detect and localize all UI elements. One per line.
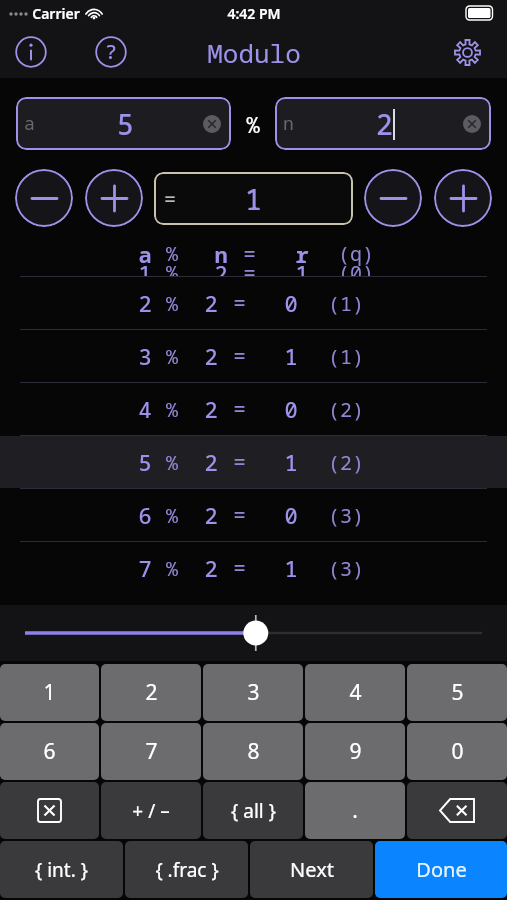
button[interactable]: 2 [0, 277, 507, 329]
button[interactable]: 2 [101, 664, 201, 721]
staticText: 5 [451, 678, 464, 707]
staticText: r [295, 239, 309, 269]
staticText: % [166, 449, 178, 476]
button[interactable]: Toggle sign [101, 782, 201, 839]
staticText: 8 [247, 737, 260, 766]
staticText: 2 [145, 678, 158, 707]
staticText: { .frac } [155, 857, 219, 883]
staticText: 0 [284, 394, 298, 424]
staticText: (3) [328, 555, 364, 582]
button[interactable]: 9 [305, 723, 405, 780]
button[interactable]: 7 [0, 542, 507, 594]
staticText: 1 [284, 447, 298, 477]
staticText: 5 [117, 105, 134, 143]
button[interactable]: Info [13, 34, 49, 70]
staticText: = [233, 448, 246, 477]
button[interactable]: 4 [0, 383, 507, 435]
staticText: % [166, 240, 178, 267]
staticText: = [243, 259, 256, 276]
button[interactable]: { int. } [0, 841, 123, 898]
staticText: 4 [349, 678, 362, 707]
staticText: 6 [43, 737, 56, 766]
staticText: (q) [338, 240, 374, 267]
button[interactable]: Increase [434, 169, 492, 227]
staticText: (1) [328, 290, 364, 317]
button[interactable]: . [305, 782, 405, 839]
staticText: Next [290, 856, 334, 883]
staticText: = [233, 342, 246, 371]
staticText: { all } [231, 798, 276, 824]
staticText: + / – [132, 798, 170, 824]
staticText: = [233, 501, 246, 530]
staticText: 1 [43, 678, 56, 707]
button[interactable]: Decrease [15, 169, 73, 227]
button[interactable]: 6 [0, 489, 507, 541]
staticText: 7 [138, 553, 152, 583]
staticText: % [166, 555, 178, 582]
button[interactable]: Settings [450, 35, 484, 69]
staticText: . [352, 796, 358, 825]
button[interactable]: 0 [407, 723, 507, 780]
button[interactable]: 8 [203, 723, 303, 780]
staticText: 2 [204, 341, 218, 371]
button[interactable]: Increase [85, 169, 143, 227]
staticText: = [233, 395, 246, 424]
button[interactable]: = [154, 172, 353, 225]
staticText: 1 [284, 341, 298, 371]
staticText: 1 [295, 258, 309, 276]
button[interactable]: a [16, 97, 231, 150]
staticText: = [233, 289, 246, 318]
button[interactable]: Backspace [407, 782, 507, 839]
button[interactable]: Next [250, 841, 373, 898]
staticText: 2 [376, 105, 393, 143]
staticText: 2 [204, 288, 218, 318]
button[interactable]: 6 [0, 723, 99, 780]
staticText: 0 [451, 737, 464, 766]
staticText: % [166, 290, 178, 317]
staticText: % [246, 109, 260, 139]
button[interactable]: 7 [101, 723, 201, 780]
staticText: 2 [204, 394, 218, 424]
button[interactable]: Done [375, 841, 507, 898]
button[interactable]: 5 [407, 664, 507, 721]
button[interactable]: Help [93, 34, 129, 70]
staticText: a [24, 111, 35, 136]
staticText: a [138, 239, 152, 269]
button[interactable]: { .frac } [125, 841, 248, 898]
staticText: 1 [138, 258, 152, 276]
staticText: (2) [328, 449, 364, 476]
button[interactable]: { all } [203, 782, 303, 839]
button[interactable]: Clear entry [0, 782, 99, 839]
button[interactable]: 1 [0, 664, 99, 721]
staticText: { int. } [35, 857, 88, 883]
staticText: (3) [328, 502, 364, 529]
staticText: (2) [328, 396, 364, 423]
staticText: 7 [145, 737, 158, 766]
staticText: 2 [214, 258, 228, 276]
staticText: (0) [338, 259, 374, 276]
staticText: 2 [204, 553, 218, 583]
staticText: = [233, 554, 246, 583]
staticText: 9 [349, 737, 362, 766]
staticText: n [283, 111, 294, 136]
staticText: 2 [138, 288, 152, 318]
button[interactable]: 5 [0, 436, 507, 488]
staticText: n [214, 239, 228, 269]
button[interactable]: n [275, 97, 491, 150]
button[interactable]: Range slider [0, 605, 507, 661]
staticText: 6 [138, 500, 152, 530]
staticText: 1 [284, 553, 298, 583]
staticText: 4:42 PM [227, 4, 281, 23]
staticText: 4 [138, 394, 152, 424]
button[interactable]: Decrease [364, 169, 422, 227]
staticText: Done [416, 856, 467, 883]
staticText: % [166, 396, 178, 423]
staticText: (1) [328, 343, 364, 370]
staticText: % [166, 502, 178, 529]
staticText: Carrier [32, 4, 80, 23]
staticText: ? [105, 38, 117, 65]
button[interactable]: 3 [0, 330, 507, 382]
button[interactable]: 4 [305, 664, 405, 721]
staticText: 0 [284, 288, 298, 318]
button[interactable]: 3 [203, 664, 303, 721]
